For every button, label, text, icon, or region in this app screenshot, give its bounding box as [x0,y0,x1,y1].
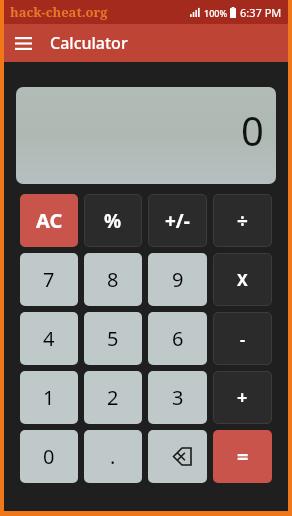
staticText: 0 [43,443,55,470]
button[interactable]: Backspace [148,430,207,483]
staticText: . [110,443,116,470]
staticText: 7 [43,266,55,293]
staticText: 5 [107,325,119,352]
button[interactable]: 2 [84,371,142,424]
staticText: +/- [165,208,190,234]
staticText: ÷ [237,208,248,234]
button[interactable]: 0 [20,430,78,483]
button[interactable]: +/- [148,194,207,247]
staticText: 8 [107,266,119,293]
button[interactable]: AC [20,194,78,247]
staticText: Calculator [50,32,128,54]
button[interactable]: X [213,253,272,306]
staticText: 1 [43,384,55,411]
staticText: 3 [172,384,184,411]
button[interactable]: 5 [84,312,142,365]
staticText: 100% [204,7,228,19]
button[interactable]: 9 [148,253,207,306]
staticText: X [237,269,248,291]
button[interactable]: 4 [20,312,78,365]
staticText: 4 [43,325,55,352]
button[interactable]: ÷ [213,194,272,247]
button[interactable]: + [213,371,272,424]
staticText: 6 [172,325,184,352]
staticText: % [104,208,122,234]
button[interactable]: 6 [148,312,207,365]
staticText: - [240,328,246,350]
staticText: 0 [241,103,264,157]
button[interactable]: . [84,430,142,483]
staticText: 6:37 PM [240,5,282,20]
staticText: + [237,385,248,410]
staticText: = [237,443,249,470]
button[interactable]: 8 [84,253,142,306]
button[interactable]: % [84,194,142,247]
button[interactable]: 7 [20,253,78,306]
button[interactable]: 3 [148,371,207,424]
staticText: 9 [172,266,184,293]
button[interactable]: - [213,312,272,365]
button[interactable]: Open navigation menu [4,24,42,62]
button[interactable]: 1 [20,371,78,424]
staticText: hack-cheat.org [10,3,108,21]
staticText: 2 [107,384,119,411]
staticText: AC [36,207,63,234]
button[interactable]: = [213,430,272,483]
